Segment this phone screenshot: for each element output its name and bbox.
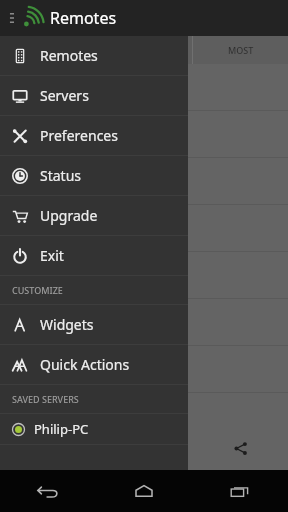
button[interactable]: MOST (193, 36, 288, 64)
staticText: CUSTOMIZE (12, 284, 63, 296)
staticText: Function Keyboard (10, 278, 98, 292)
staticText: Exit (40, 246, 64, 265)
staticText: MOST (228, 44, 254, 56)
staticText: Preferences (40, 126, 118, 145)
button[interactable]: Version (0, 64, 288, 110)
button[interactable]: Remotes (0, 36, 188, 75)
button[interactable]: RECENT (97, 36, 192, 64)
staticText: Keyboard (Russian) (10, 352, 145, 372)
button[interactable]: File Manager (0, 158, 288, 204)
staticText: Servers (40, 86, 89, 105)
staticText: Quick Actions (40, 355, 130, 374)
button[interactable]: Keyboard (0, 205, 288, 251)
button[interactable]: Back (0, 470, 96, 512)
staticText: Philip-PC (34, 420, 89, 438)
staticText: Remotes (50, 7, 117, 29)
staticText: Widgets (40, 315, 94, 334)
button[interactable]: Keyboard (Function) (0, 252, 288, 298)
button[interactable]: Philip-PC (0, 414, 188, 444)
button[interactable]: Preferences (0, 116, 188, 155)
staticText: SAVED SERVERS (12, 393, 79, 405)
button[interactable]: Voice (96, 426, 192, 470)
staticText: Keyboard (Function) (10, 258, 151, 278)
staticText: RECENT (31, 44, 65, 56)
button[interactable]: Exit (0, 236, 188, 275)
button[interactable]: Basic Input (0, 111, 288, 157)
staticText: Keyboard (German) (10, 305, 148, 325)
staticText: Basic Input (10, 117, 89, 137)
staticText: German Keyboard (10, 325, 96, 339)
staticText: Upgrade (40, 206, 98, 225)
button[interactable]: Home (96, 470, 192, 512)
staticText: Get more features.. (10, 90, 101, 104)
button[interactable]: Quick Actions (0, 345, 188, 384)
button[interactable]: Share (192, 426, 288, 470)
staticText: File Manager (10, 164, 102, 184)
button[interactable]: Upgrade (0, 196, 188, 235)
button[interactable]: RECENT (0, 36, 96, 64)
staticText: Keyboard (10, 211, 77, 231)
button[interactable]: Recents (192, 470, 288, 512)
button[interactable]: Servers (0, 76, 188, 115)
button[interactable]: Refresh (0, 426, 96, 470)
staticText: Russian Keyboard (10, 372, 94, 386)
button[interactable]: Keyboard (German) (0, 299, 288, 345)
staticText: Remotes (40, 46, 98, 65)
staticText: Status (40, 166, 82, 185)
button[interactable]: Keyboard (Russian) (0, 346, 288, 392)
staticText: Mouse and keyboard remote. (10, 137, 149, 151)
button[interactable]: Widgets (0, 305, 188, 344)
button[interactable]: Open navigation drawer (2, 0, 16, 36)
button[interactable]: Status (0, 156, 188, 195)
